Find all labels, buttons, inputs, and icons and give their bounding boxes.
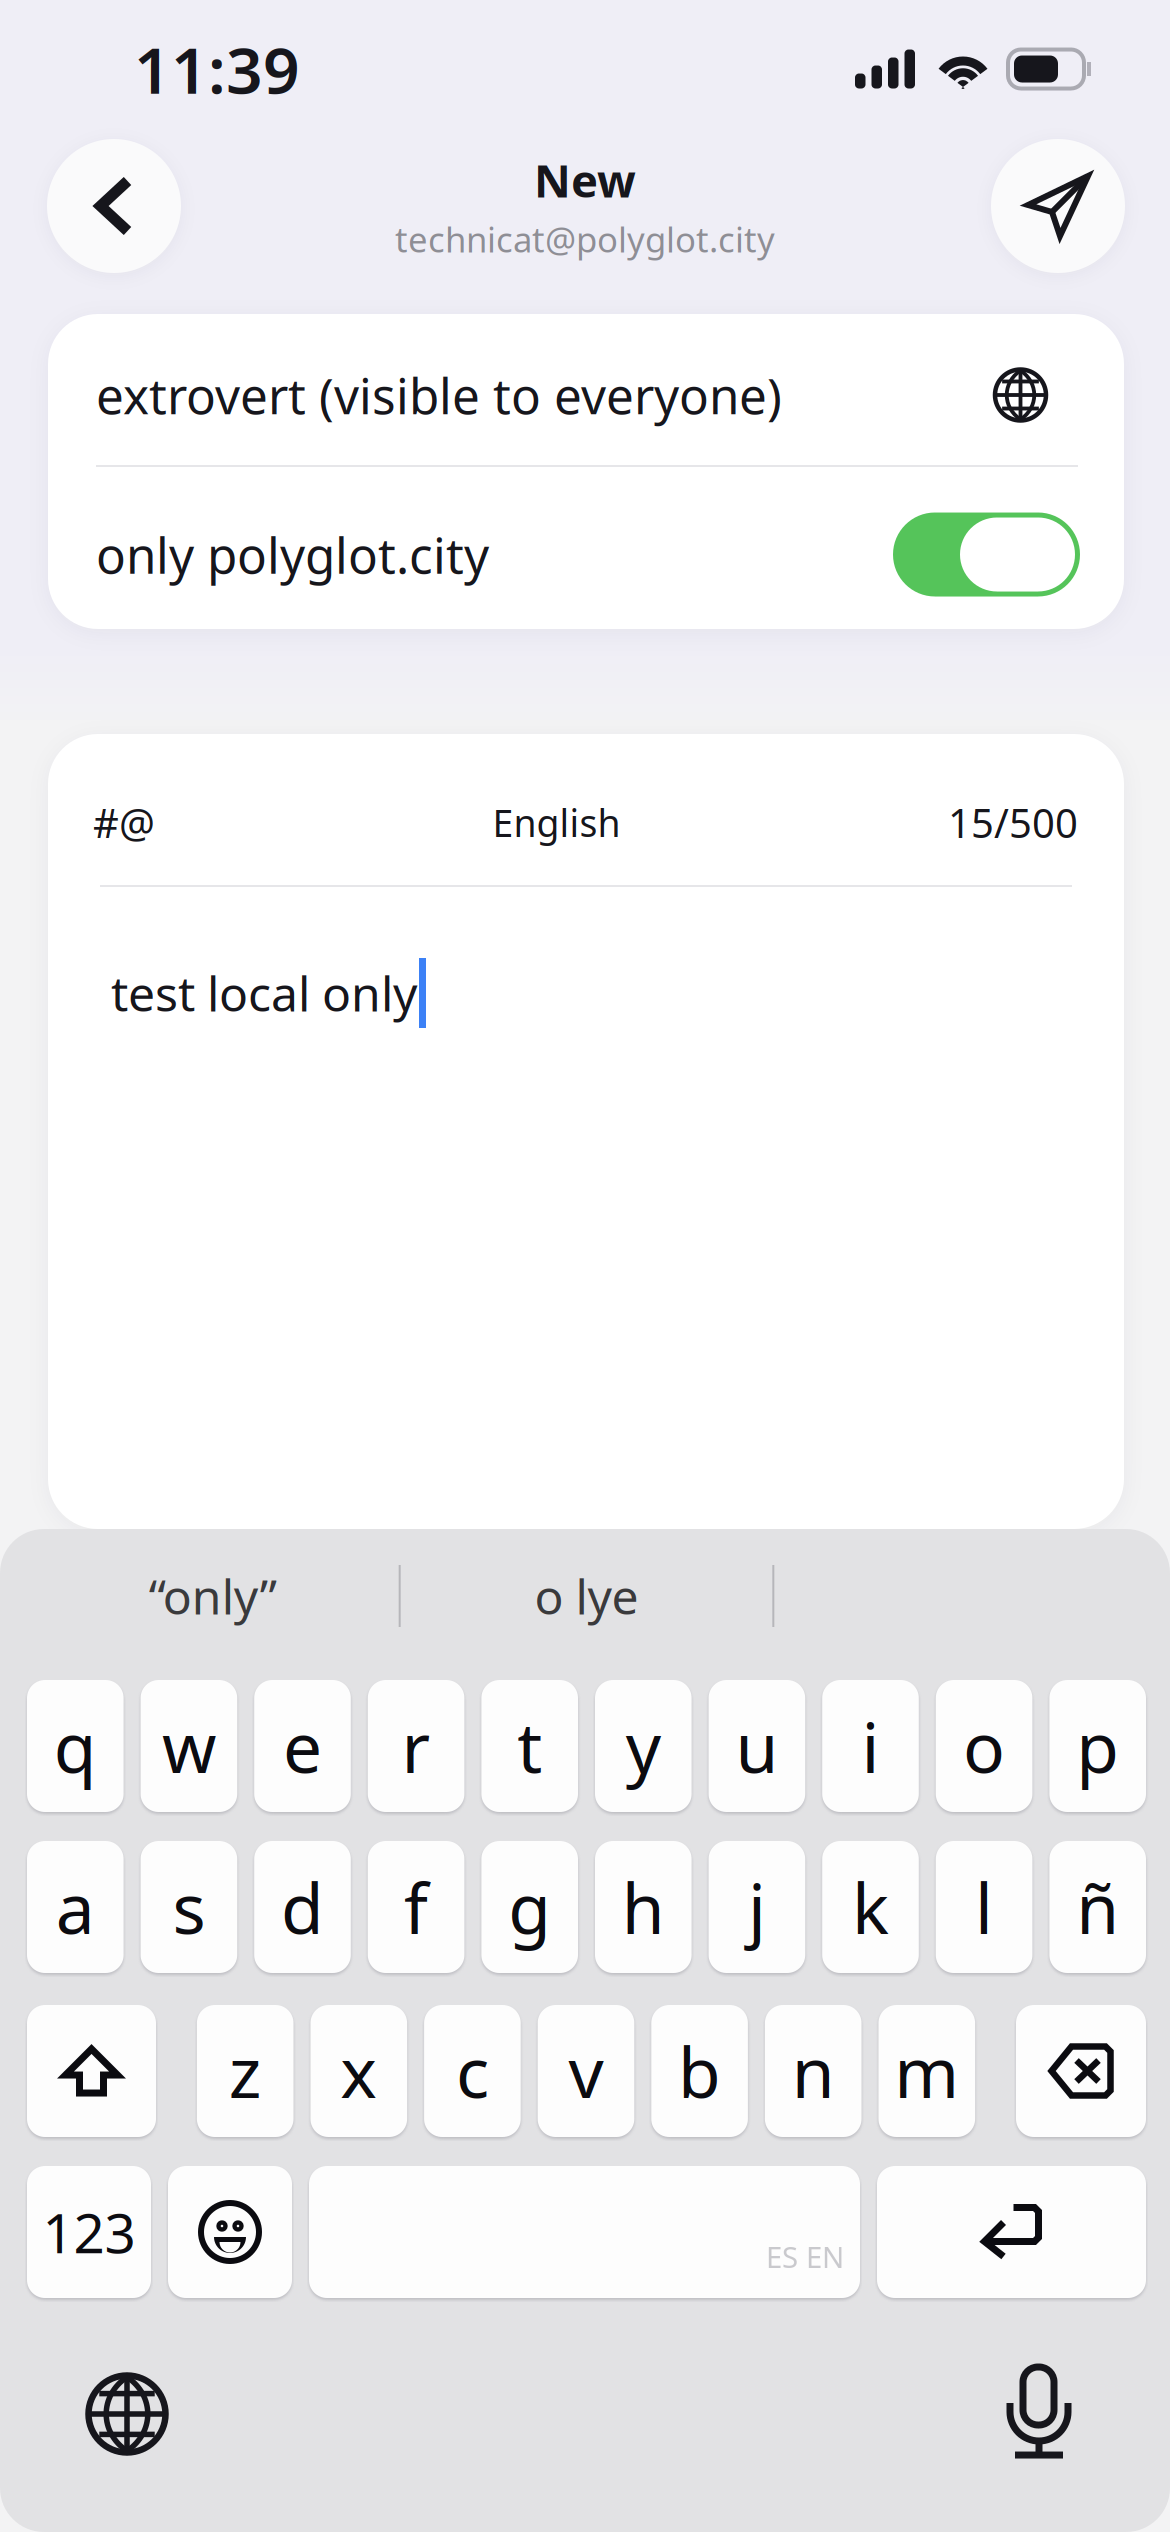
staticText: b <box>678 2025 721 2117</box>
button[interactable]: k <box>822 1841 919 1973</box>
button[interactable]: o lye <box>401 1546 772 1646</box>
staticText: New <box>534 150 636 210</box>
staticText: f <box>404 1861 428 1953</box>
button[interactable]: h <box>595 1841 692 1973</box>
button[interactable]: Only polyglot.city <box>893 512 1080 596</box>
staticText: extrovert (visible to everyone) <box>96 362 782 428</box>
button[interactable]: Back <box>47 139 181 273</box>
staticText: j <box>748 1861 766 1953</box>
button[interactable]: q <box>27 1680 124 1812</box>
staticText: i <box>861 1700 879 1792</box>
staticText: d <box>281 1861 324 1953</box>
staticText: g <box>508 1861 551 1953</box>
staticText: only polyglot.city <box>96 522 489 587</box>
button[interactable]: Space <box>309 2166 860 2298</box>
staticText: k <box>852 1861 889 1953</box>
button[interactable]: b <box>651 2005 748 2137</box>
staticText: h <box>622 1861 665 1953</box>
button[interactable]: u <box>709 1680 805 1812</box>
button[interactable]: j <box>709 1841 805 1973</box>
staticText: test local only <box>111 961 417 1025</box>
button[interactable]: s <box>141 1841 237 1973</box>
button[interactable]: x <box>310 2005 407 2137</box>
staticText: 11:39 <box>134 26 300 111</box>
button[interactable]: Send <box>991 139 1125 273</box>
button[interactable]: Shift <box>27 2005 156 2137</box>
button[interactable]: Emoji <box>168 2166 292 2298</box>
staticText: m <box>894 2025 959 2117</box>
button[interactable]: l <box>936 1841 1032 1973</box>
staticText: r <box>402 1700 431 1792</box>
button[interactable]: a <box>27 1841 124 1973</box>
staticText: x <box>340 2025 377 2117</box>
button[interactable]: n <box>765 2005 861 2137</box>
button[interactable]: Next keyboard <box>68 2360 186 2468</box>
staticText: English <box>492 798 620 847</box>
staticText: s <box>172 1861 205 1953</box>
button[interactable]: Audience: extrovert <box>48 313 1124 465</box>
staticText: t <box>517 1700 542 1792</box>
button[interactable]: t <box>481 1680 578 1812</box>
staticText: y <box>626 1700 661 1792</box>
button[interactable]: Insert hashtag or mention <box>93 774 303 870</box>
button[interactable]: w <box>141 1680 237 1812</box>
staticText: o lye <box>534 1564 638 1628</box>
button[interactable]: o <box>936 1680 1032 1812</box>
staticText: technicat@polyglot.city <box>395 216 775 262</box>
staticText: n <box>792 2025 835 2117</box>
button[interactable]: i <box>822 1680 919 1812</box>
button[interactable]: g <box>481 1841 578 1973</box>
staticText: ES EN <box>766 2237 844 2276</box>
button[interactable]: Language: English <box>492 774 620 870</box>
staticText: e <box>283 1700 322 1792</box>
staticText: l <box>975 1861 993 1953</box>
button[interactable]: m <box>878 2005 975 2137</box>
staticText: #@ <box>93 796 155 849</box>
button[interactable]: Delete <box>1016 2005 1146 2137</box>
button[interactable]: v <box>538 2005 634 2137</box>
button[interactable]: Dictate <box>980 2360 1098 2468</box>
button[interactable]: 123 <box>27 2166 151 2298</box>
button[interactable]: Return <box>877 2166 1146 2298</box>
button[interactable]: y <box>595 1680 692 1812</box>
button[interactable]: f <box>368 1841 464 1973</box>
button[interactable]: d <box>254 1841 351 1973</box>
staticText: 15/500 <box>948 796 1078 849</box>
staticText: w <box>162 1700 216 1792</box>
staticText: o <box>963 1700 1005 1792</box>
button[interactable]: z <box>197 2005 293 2137</box>
staticText: u <box>735 1700 778 1792</box>
button[interactable]: ñ <box>1049 1841 1146 1973</box>
staticText: ñ <box>1076 1861 1119 1953</box>
button[interactable]: p <box>1049 1680 1146 1812</box>
staticText: c <box>456 2025 489 2117</box>
staticText: “only” <box>149 1564 277 1628</box>
staticText: z <box>229 2025 262 2117</box>
staticText: v <box>568 2025 603 2117</box>
button[interactable]: “only” <box>27 1546 399 1646</box>
button[interactable]: e <box>254 1680 351 1812</box>
button[interactable]: r <box>368 1680 464 1812</box>
staticText: 123 <box>42 2196 135 2268</box>
staticText: q <box>54 1700 97 1792</box>
staticText: a <box>56 1861 95 1953</box>
button[interactable]: c <box>424 2005 521 2137</box>
staticText: p <box>1076 1700 1119 1792</box>
